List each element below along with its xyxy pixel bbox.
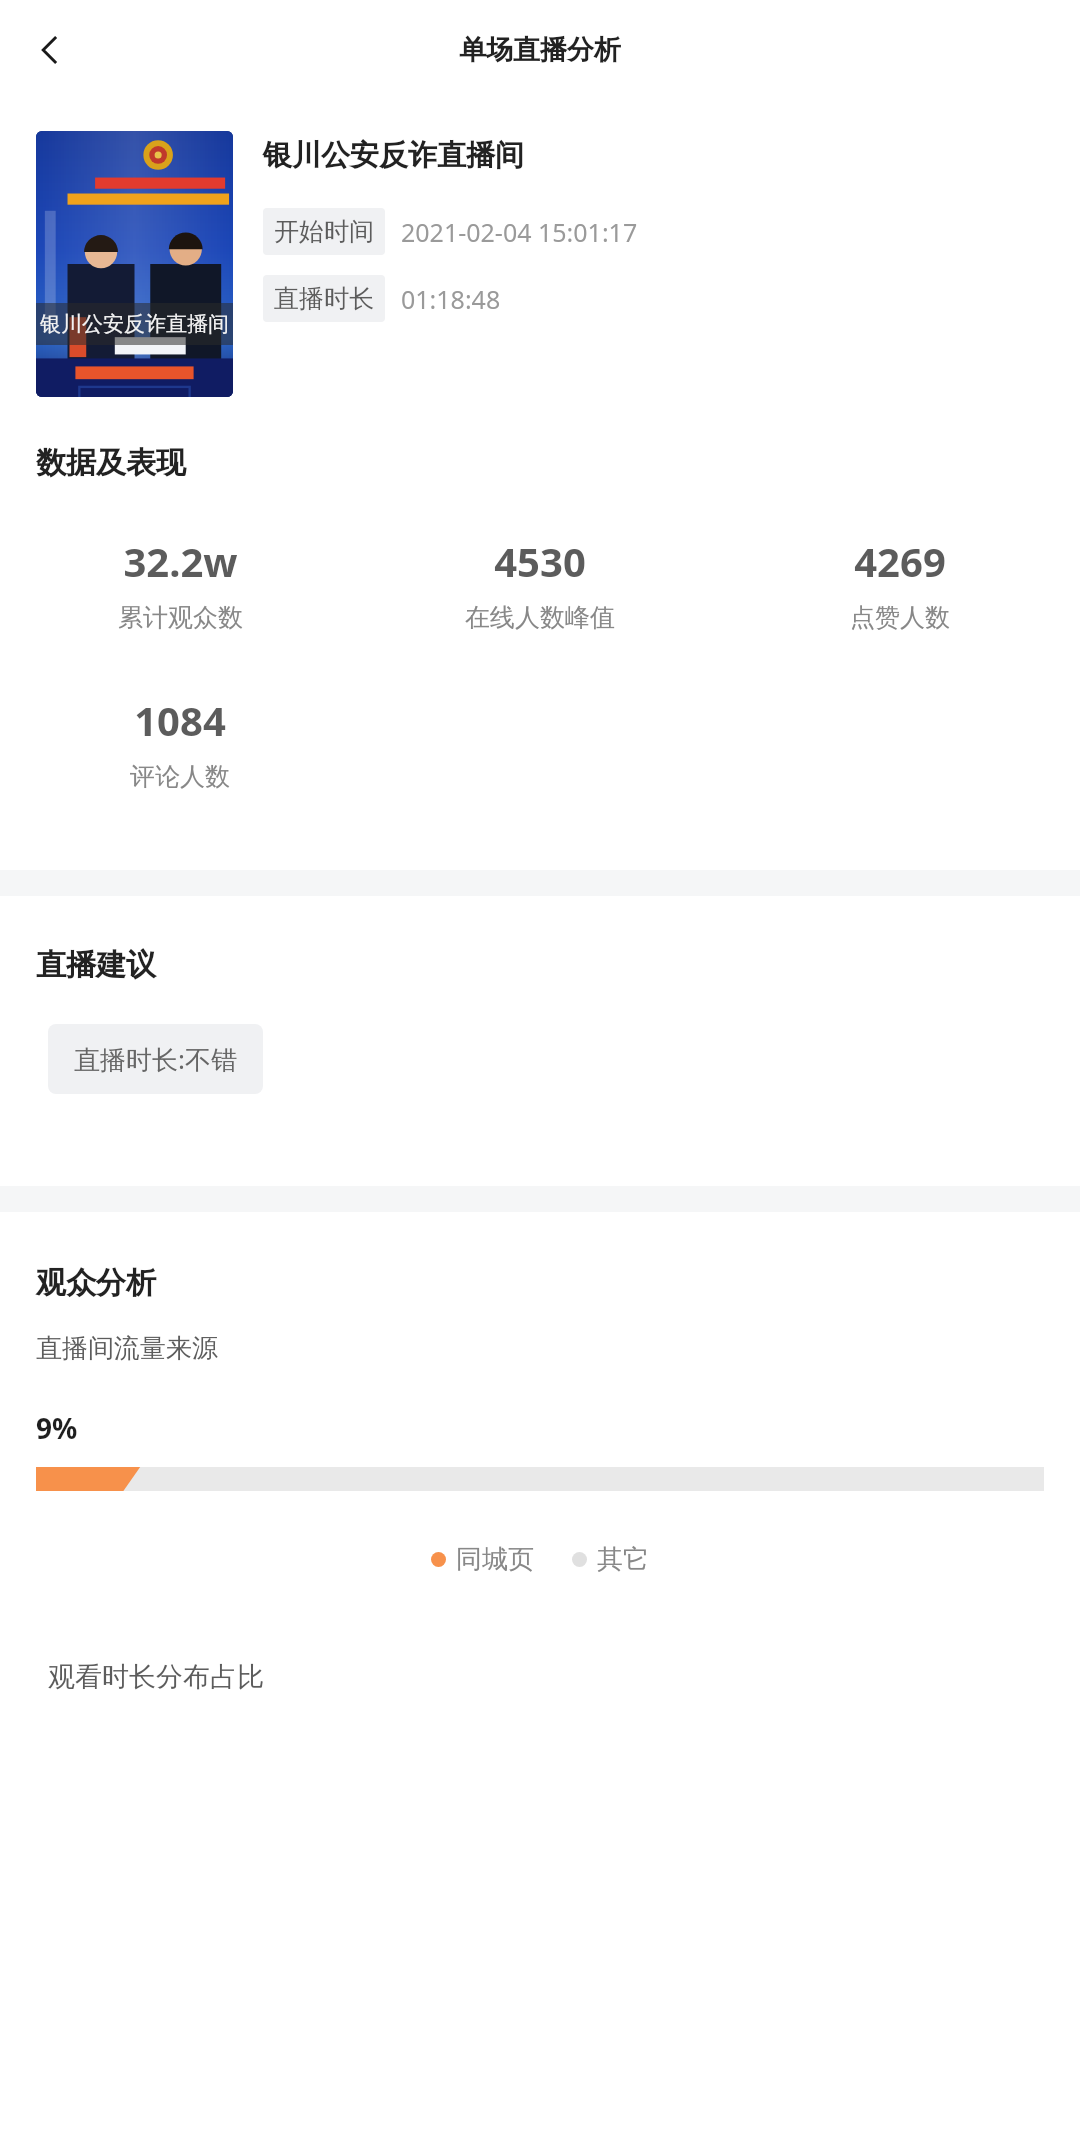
button[interactable]: 其它 [572, 1543, 649, 1576]
staticText: 评论人数 [130, 761, 230, 792]
staticText: 数据及表现 [36, 444, 186, 482]
staticText: 直播时长 [274, 283, 374, 314]
staticText: 银川公安反诈直播间 [263, 137, 524, 174]
staticText: 单场直播分析 [459, 33, 621, 67]
button[interactable]: 同城页 [431, 1543, 534, 1576]
staticText: 观看时长分布占比 [48, 1660, 264, 1694]
staticText: 观众分析 [36, 1264, 156, 1302]
button[interactable]: 直播时长:不错 [48, 1024, 263, 1094]
staticText: 直播建议 [36, 946, 156, 984]
button[interactable]: 32.2w [0, 534, 360, 633]
staticText: 银川公安反诈直播间 [40, 311, 229, 337]
staticText: 在线人数峰值 [465, 602, 615, 633]
staticText: 直播间流量来源 [36, 1332, 218, 1365]
staticText: 32.2w [123, 534, 238, 588]
button[interactable]: 4530 [360, 534, 720, 633]
staticText: 开始时间 [274, 216, 374, 247]
staticText: 其它 [597, 1543, 649, 1576]
staticText: 累计观众数 [118, 602, 243, 633]
button[interactable]: 1084 [0, 693, 360, 792]
staticText: 01:18:48 [401, 282, 501, 316]
staticText: 4530 [494, 534, 586, 588]
staticText: 1084 [134, 693, 226, 747]
staticText: 2021-02-04 15:01:17 [401, 215, 638, 249]
button[interactable]: 4269 [720, 534, 1080, 633]
button[interactable]: Back [14, 14, 86, 86]
staticText: 9% [36, 1409, 78, 1447]
staticText: 同城页 [456, 1543, 534, 1576]
staticText: 点赞人数 [850, 602, 950, 633]
staticText: 直播时长:不错 [74, 1041, 237, 1077]
staticText: 4269 [854, 534, 946, 588]
button[interactable]: 银川公安反诈直播间 [36, 131, 1056, 397]
